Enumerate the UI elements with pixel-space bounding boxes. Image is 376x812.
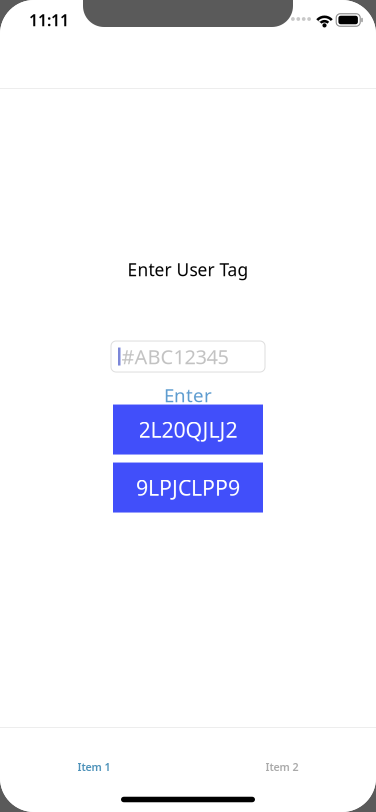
staticText: 11:11 — [29, 9, 69, 31]
staticText: Enter — [164, 383, 212, 407]
staticText: Enter User Tag — [127, 258, 248, 281]
button[interactable]: Enter — [164, 386, 212, 404]
staticText: Item 1 — [77, 760, 110, 774]
button[interactable]: 2L20QJLJ2 — [113, 404, 263, 454]
button[interactable]: Item 2 — [188, 728, 376, 774]
staticText: 9LPJCLPP9 — [136, 473, 240, 502]
staticText: Item 2 — [265, 760, 298, 774]
button[interactable]: 9LPJCLPP9 — [113, 462, 263, 512]
button[interactable]: Item 1 — [0, 728, 188, 774]
staticText: 2L20QJLJ2 — [138, 415, 237, 444]
staticText: #ABC12345 — [121, 343, 228, 370]
